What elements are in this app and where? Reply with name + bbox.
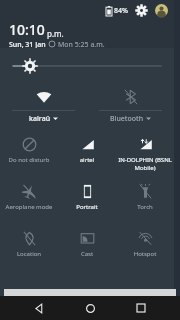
staticText: Location <box>2 250 56 258</box>
button[interactable]: Bluetooth <box>87 84 174 126</box>
button[interactable]: Location <box>0 224 58 271</box>
button[interactable]: Torch <box>116 177 174 224</box>
button[interactable]: Settings <box>135 4 148 17</box>
button[interactable]: Recent apps <box>129 296 153 320</box>
button[interactable]: Portrait <box>58 177 116 224</box>
button[interactable]: Hotspot <box>116 224 174 271</box>
button[interactable]: kalraü <box>0 84 87 126</box>
staticText: p.m. <box>47 28 64 39</box>
button[interactable]: Do not disturb <box>0 130 58 177</box>
staticText: kalraü <box>29 114 51 124</box>
staticText: Cast <box>60 250 114 258</box>
button[interactable]: airtel <box>58 130 116 177</box>
staticText: Portrait <box>60 203 114 211</box>
button[interactable]: User profile <box>155 4 168 17</box>
button[interactable]: Aeroplane mode <box>0 177 58 224</box>
button[interactable]: Back <box>27 296 51 320</box>
staticText: Mon 5:25 a.m. <box>58 40 105 48</box>
staticText: airtel <box>60 156 114 164</box>
button[interactable]: IN-DOLPHIN (BSNL Mobile) <box>116 130 174 177</box>
button[interactable]: Cast <box>58 224 116 271</box>
staticText: 84% <box>114 6 128 16</box>
button[interactable]: Home <box>78 296 102 320</box>
staticText: Sun, 31 Jan <box>9 40 46 48</box>
staticText: Torch <box>118 203 172 211</box>
staticText: Bluetooth <box>110 114 144 124</box>
button[interactable]: Brightness <box>0 48 174 84</box>
staticText: Aeroplane mode <box>2 203 56 211</box>
staticText: Do not disturb <box>2 156 56 164</box>
staticText: IN-DOLPHIN (BSNL Mobile) <box>118 156 172 172</box>
staticText: Hotspot <box>118 250 172 258</box>
staticText: 10:10 <box>9 20 45 39</box>
